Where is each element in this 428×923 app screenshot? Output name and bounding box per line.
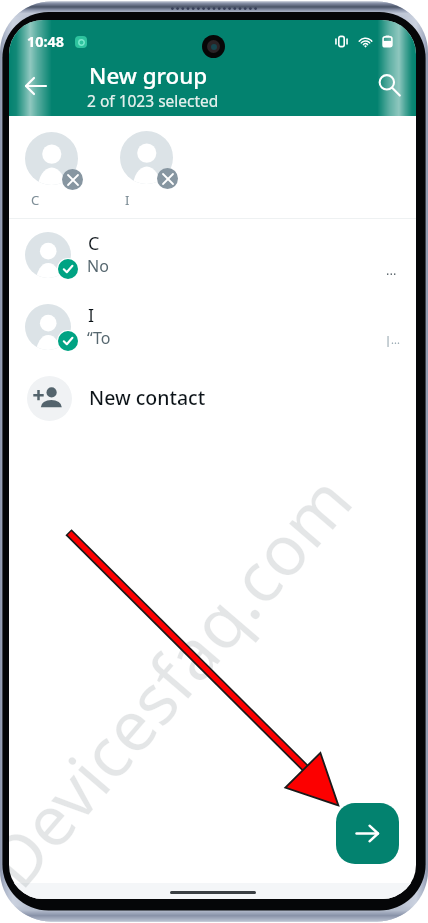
staticText: Devicesfaq.com xyxy=(9,454,367,899)
staticText: 2 of 1023 selected xyxy=(87,90,219,111)
staticText: I xyxy=(125,191,130,209)
staticText: “To xyxy=(87,327,111,349)
staticText: I xyxy=(88,303,95,328)
staticText: New group xyxy=(89,60,208,91)
staticText: New contact xyxy=(89,384,206,411)
button[interactable]: Back xyxy=(14,64,58,108)
button[interactable]: I xyxy=(9,291,416,363)
button[interactable] xyxy=(120,131,173,184)
staticText: C xyxy=(31,191,40,209)
button[interactable]: New contact xyxy=(9,367,416,429)
staticText: ... xyxy=(386,261,397,279)
button[interactable]: Next xyxy=(336,803,399,864)
staticText: No xyxy=(87,255,109,277)
button[interactable]: C xyxy=(9,219,416,291)
staticText: 10:48 xyxy=(27,32,64,52)
staticText: C xyxy=(88,231,100,256)
button[interactable]: Search xyxy=(367,63,411,107)
button[interactable] xyxy=(25,132,78,185)
staticText: |... xyxy=(385,332,400,347)
